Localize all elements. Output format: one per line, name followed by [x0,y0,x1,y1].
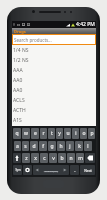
button[interactable]: AA0 [12,85,96,95]
button[interactable]: AAA [12,65,96,75]
staticText: Next [84,168,92,173]
button[interactable]: 1/4 NS [12,45,96,55]
staticText: r [42,130,45,137]
button[interactable]: x [31,153,39,163]
button[interactable]: r [40,128,47,139]
staticText: English(US) [45,169,58,172]
button[interactable]: a [14,141,21,151]
staticText: o [82,130,86,137]
staticText: . [74,167,76,174]
staticText: x [34,155,37,162]
button[interactable]: Search products... [12,34,96,45]
button[interactable]: Drugs [12,28,96,34]
button[interactable]: l [84,141,92,151]
button[interactable]: y [56,128,63,139]
button[interactable]: w [22,128,30,139]
button[interactable]: m [76,153,84,163]
button[interactable]: Next [80,165,95,175]
button[interactable]: ACLS [12,95,96,105]
staticText: z [25,155,28,162]
button[interactable]: s [22,141,29,151]
staticText: A1S [13,117,22,124]
staticText: j [69,143,71,150]
button[interactable]: b [58,153,66,163]
button[interactable]: o [80,128,87,139]
staticText: h [59,143,63,150]
staticText: g [50,143,54,150]
button[interactable]: c [40,153,48,163]
button[interactable]: h [57,141,65,151]
staticText: f [42,143,44,150]
button[interactable]: Sym [13,165,22,175]
staticText: m [78,155,83,162]
staticText: v [52,155,55,162]
staticText: d [32,143,36,150]
staticText: k [78,143,81,150]
staticText: l [87,143,89,150]
button[interactable]: d [30,141,38,151]
button[interactable]: Shift [13,153,21,163]
button[interactable]: Backspace [85,153,95,163]
staticText: AA0 [13,87,23,94]
staticText: AA0 [13,77,23,84]
staticText: u [66,130,70,137]
button[interactable]: u [64,128,71,139]
button[interactable]: i [72,128,79,139]
button[interactable]: ACTH [12,105,96,115]
button[interactable]: j [66,141,74,151]
staticText: a [16,143,19,150]
button[interactable]: AA0 [12,75,96,85]
staticText: t [51,130,53,137]
staticText: p [90,130,94,137]
staticText: e [34,130,37,137]
button[interactable]: t [48,128,55,139]
button[interactable]: f [39,141,47,151]
staticText: AAA [13,67,23,74]
staticText: ACLS [13,97,25,104]
button[interactable]: . [70,165,79,175]
button[interactable]: z [22,153,30,163]
staticText: ACTH [13,107,26,114]
button[interactable]: k [75,141,83,151]
button[interactable]: g [48,141,56,151]
button[interactable]: 1/2 NS [12,55,96,65]
button[interactable]: e [31,128,39,139]
staticText: w [24,130,28,137]
button[interactable]: A1S [12,115,96,125]
staticText: Search products... [14,37,52,43]
staticText: n [69,155,73,162]
button[interactable]: v [49,153,57,163]
staticText: s [24,143,27,150]
staticText: c [43,155,46,162]
button[interactable]: Settings [23,165,32,175]
staticText: 4:42 PM [76,21,95,28]
staticText: i [75,130,77,137]
staticText: y [58,130,61,137]
staticText: 1/4 NS [13,47,29,54]
staticText: 1/2 NS [13,57,29,64]
staticText: Drugs [14,29,26,34]
button[interactable]: n [67,153,75,163]
button[interactable]: q [13,128,21,139]
staticText: q [15,130,19,137]
button[interactable]: Space [33,165,69,175]
staticText: b [60,155,64,162]
button[interactable]: p [88,128,95,139]
staticText: Sym [15,168,21,172]
